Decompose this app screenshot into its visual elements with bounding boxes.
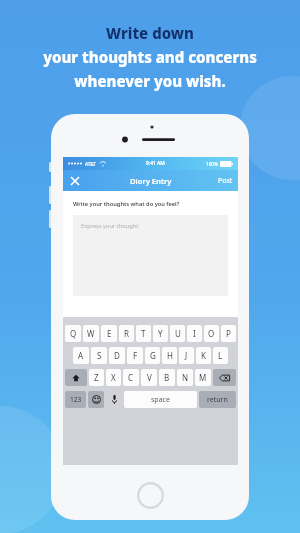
button[interactable]: return [199, 391, 236, 408]
button[interactable]: N [177, 369, 193, 386]
button[interactable]: M [195, 369, 211, 386]
staticText: Write your thoughts what do you feel? [73, 200, 180, 208]
staticText: E [107, 328, 112, 339]
button[interactable]: space [124, 391, 197, 408]
staticText: K [201, 350, 206, 361]
staticText: V [147, 372, 152, 383]
staticText: 100% [206, 161, 218, 167]
button[interactable]: S [91, 347, 107, 364]
staticText: M [199, 372, 207, 383]
staticText: Diory Entry [130, 176, 172, 186]
button[interactable]: P [221, 325, 236, 342]
button[interactable]: Emoji [88, 391, 104, 408]
button[interactable]: F [127, 347, 143, 364]
button[interactable]: Express your thought [73, 215, 228, 296]
button[interactable]: V [141, 369, 157, 386]
staticText: Y [158, 328, 163, 339]
staticText: X [111, 372, 116, 383]
staticText: O [208, 328, 215, 339]
button[interactable]: O [204, 325, 219, 342]
button[interactable]: Y [153, 325, 168, 342]
staticText: R [124, 328, 129, 339]
button[interactable]: 123 [65, 391, 86, 408]
button[interactable]: Q [65, 325, 81, 342]
button[interactable]: T [136, 325, 151, 342]
button[interactable]: J [179, 347, 194, 364]
button[interactable]: W [83, 325, 99, 342]
staticText: C [128, 372, 134, 383]
button[interactable]: Z [89, 369, 104, 386]
button[interactable]: H [162, 347, 177, 364]
staticText: I [193, 328, 196, 339]
button[interactable]: Shift [65, 369, 87, 386]
staticText: 123 [70, 395, 82, 404]
button[interactable]: K [196, 347, 211, 364]
staticText: U [175, 328, 181, 339]
staticText: B [164, 372, 170, 383]
button[interactable]: Close [66, 172, 83, 189]
button[interactable]: Post [213, 172, 238, 190]
button[interactable]: U [170, 325, 185, 342]
button[interactable]: X [106, 369, 121, 386]
staticText: S [97, 350, 102, 361]
staticText: W [87, 328, 95, 339]
button[interactable]: C [123, 369, 139, 386]
staticText: P [226, 328, 231, 339]
button[interactable]: L [213, 347, 228, 364]
staticText: J [185, 350, 188, 361]
staticText: H [167, 350, 173, 361]
staticText: Write down [106, 23, 194, 43]
staticText: N [182, 372, 189, 383]
button[interactable]: R [119, 325, 134, 342]
staticText: L [218, 350, 223, 361]
staticText: 9:41 AM [146, 160, 165, 167]
staticText: D [114, 350, 120, 361]
staticText: AT&T [85, 161, 96, 167]
staticText: Q [70, 328, 77, 339]
staticText: T [141, 328, 146, 339]
button[interactable]: B [159, 369, 175, 386]
staticText: whenever you wish. [74, 71, 226, 91]
button[interactable]: A [73, 347, 89, 364]
staticText: Z [94, 372, 99, 383]
button[interactable]: Dictate [106, 391, 122, 408]
staticText: A [78, 350, 84, 361]
staticText: G [150, 350, 156, 361]
staticText: Post [218, 176, 233, 186]
staticText: return [207, 395, 228, 405]
staticText: your thoughts and concerns [43, 47, 257, 67]
button[interactable]: Backspace [213, 369, 236, 386]
button[interactable]: D [109, 347, 125, 364]
staticText: Express your thought [81, 222, 139, 230]
button[interactable]: G [145, 347, 160, 364]
staticText: F [133, 350, 138, 361]
button[interactable]: I [187, 325, 202, 342]
button[interactable]: E [101, 325, 117, 342]
staticText: space [151, 395, 170, 405]
